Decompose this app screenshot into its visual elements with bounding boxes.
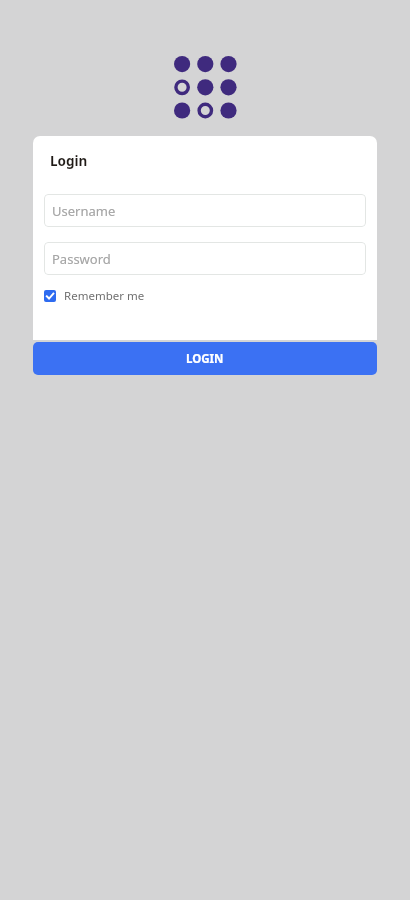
button[interactable]: Password [44,242,366,275]
other: Remember me checkbox [44,290,56,302]
staticText: Username [52,202,116,220]
button[interactable]: LOGIN [33,342,377,375]
staticText: Password [52,250,111,268]
button[interactable]: Remember me checkbox [44,288,145,304]
button[interactable]: Username [44,194,366,227]
staticText: LOGIN [186,351,224,367]
staticText: Remember me [64,288,145,304]
staticText: Login [50,152,88,170]
